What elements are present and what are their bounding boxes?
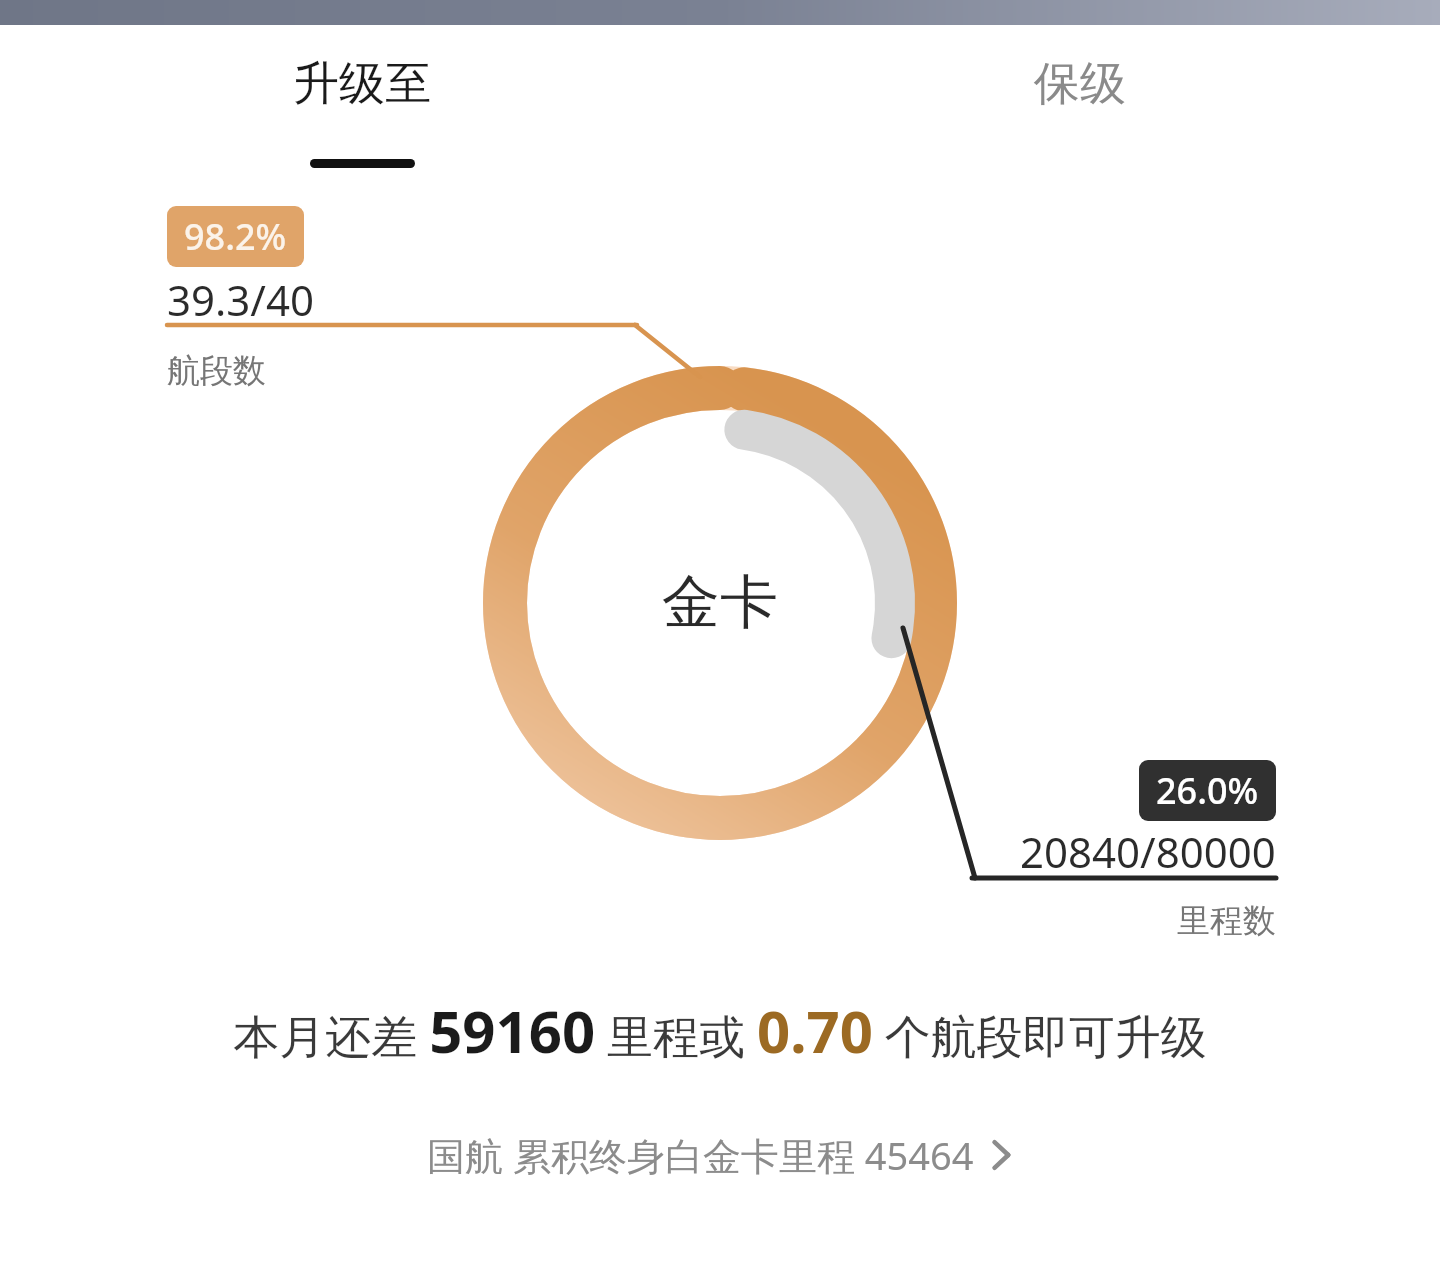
staticText: 39.3/40	[167, 271, 315, 328]
button[interactable]: 国航 累积终身白金卡里程 45464	[0, 1110, 1440, 1200]
other: 查看详情	[988, 1135, 1014, 1175]
staticText: 航段数	[167, 350, 266, 392]
staticText: 26.0%	[1156, 766, 1259, 815]
staticText: 里程数	[1177, 900, 1276, 942]
button[interactable]: 保级	[960, 55, 1200, 135]
staticText: 升级至	[293, 55, 431, 113]
staticText: 保级	[1034, 55, 1126, 113]
staticText: 金卡	[662, 566, 778, 639]
staticText: 20840/80000	[1020, 823, 1276, 880]
staticText: 本月还差 59160 里程或 0.70 个航段即可升级	[233, 991, 1207, 1070]
staticText: 98.2%	[184, 212, 287, 261]
staticText: 国航 累积终身白金卡里程 45464	[427, 1129, 974, 1181]
button[interactable]: 升级至	[242, 55, 482, 185]
